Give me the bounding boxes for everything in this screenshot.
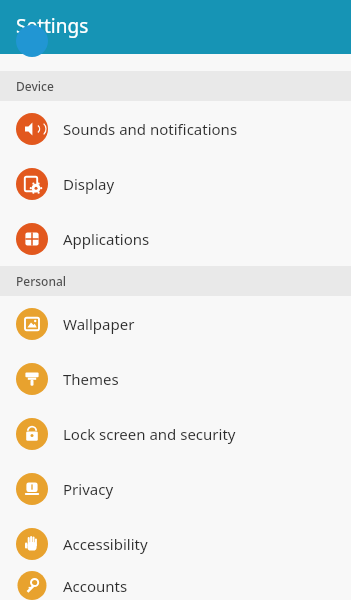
staticText: Device (16, 78, 54, 94)
button[interactable] (0, 54, 351, 71)
staticText: Lock screen and security (63, 424, 236, 444)
staticText: Accessibility (63, 534, 148, 554)
button[interactable]: Accounts (0, 571, 351, 600)
button[interactable]: Display (0, 156, 351, 211)
staticText: Wallpaper (63, 314, 135, 334)
staticText: Sounds and notifications (63, 119, 238, 139)
button[interactable]: Wallpaper (0, 296, 351, 351)
button[interactable]: Applications (0, 211, 351, 266)
staticText: Personal (16, 273, 67, 289)
button[interactable]: Sounds and notifications (0, 101, 351, 156)
button[interactable]: Accessibility (0, 516, 351, 571)
staticText: Display (63, 174, 115, 194)
button[interactable]: Themes (0, 351, 351, 406)
staticText: Applications (63, 229, 150, 249)
staticText: Themes (63, 369, 119, 389)
staticText: Settings (16, 13, 89, 39)
button[interactable]: Lock screen and security (0, 406, 351, 461)
button[interactable]: Privacy (0, 461, 351, 516)
staticText: Privacy (63, 479, 114, 499)
staticText: Accounts (63, 576, 128, 596)
